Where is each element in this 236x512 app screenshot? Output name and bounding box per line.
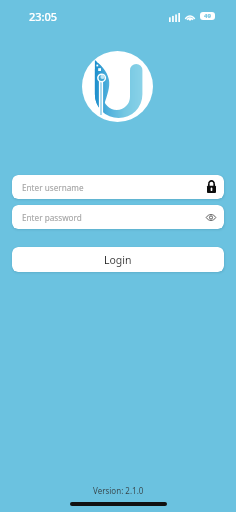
staticText: Enter password (22, 212, 206, 223)
button[interactable]: Enter username (12, 175, 224, 199)
staticText: Login (104, 253, 132, 267)
button[interactable]: Enter password (12, 205, 224, 229)
other: Password protected (207, 181, 216, 193)
staticText: Enter username (22, 182, 207, 193)
button[interactable]: Login (12, 247, 224, 272)
other: Wi-Fi (185, 14, 195, 21)
staticText: Version: 2.1.0 (93, 485, 144, 496)
other: Show password (206, 214, 216, 221)
staticText: 49 (204, 12, 211, 20)
other: Cellular signal (169, 13, 180, 22)
staticText: 23:05 (29, 9, 58, 24)
